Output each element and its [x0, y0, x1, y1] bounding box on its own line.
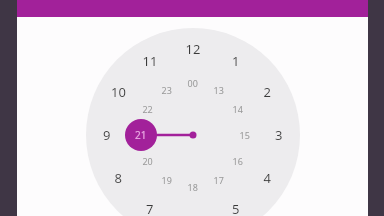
button[interactable]: Clock face, hour 21 selected: [0, 17, 384, 216]
button[interactable]: Selected time: [0, 0, 384, 17]
